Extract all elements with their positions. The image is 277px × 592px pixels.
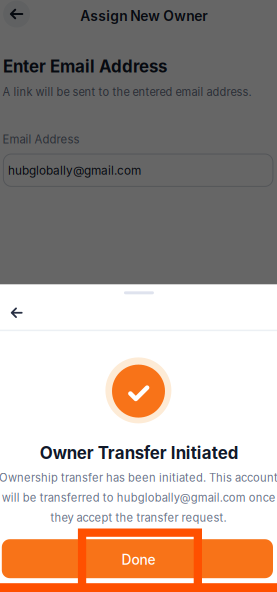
button[interactable]: Done [2,539,273,578]
button[interactable]: Back [1,298,33,328]
staticText: Assign New Owner [80,8,207,24]
staticText: Ownership transfer has been initiated. T… [0,471,277,485]
staticText: hubglobally@gmail.com [8,163,141,178]
staticText: Done [121,551,155,568]
staticText: they accept the transfer request. [50,511,226,525]
staticText: A link will be sent to the entered email… [3,85,252,99]
staticText: Email Address [2,133,79,146]
staticText: Enter Email Address [3,56,167,76]
staticText: will be transferred to hubglobally@gmail… [2,491,276,505]
staticText: Owner Transfer Initiated [40,443,239,463]
button[interactable]: Back [1,0,33,30]
